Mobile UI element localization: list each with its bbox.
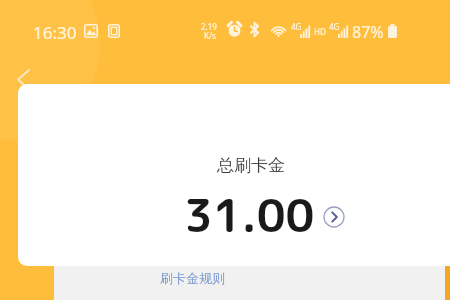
button[interactable]: 刷卡金规则	[160, 270, 225, 286]
staticText: 16:30	[33, 21, 77, 44]
staticText: 4G	[329, 21, 340, 32]
staticText: K/s	[204, 30, 216, 41]
staticText: 刷卡金规则	[160, 270, 225, 286]
button[interactable]: Details	[323, 206, 345, 228]
staticText: 总刷卡金	[217, 155, 285, 176]
button[interactable]: Back	[10, 62, 36, 90]
staticText: 2.19	[201, 21, 217, 32]
staticText: 87%	[352, 21, 384, 43]
staticText: 4G	[291, 21, 302, 32]
staticText: HD	[314, 26, 326, 37]
staticText: 31.00	[184, 184, 315, 247]
